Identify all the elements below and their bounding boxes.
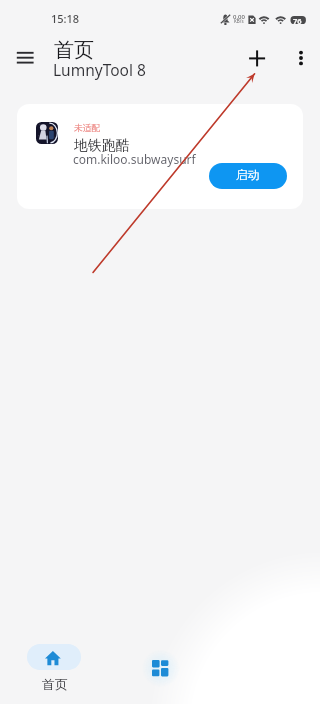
staticText: KB/s <box>234 18 244 24</box>
button[interactable]: 启动 <box>209 163 287 189</box>
staticText: 地铁跑酷 <box>74 137 130 155</box>
staticText: 未适配 <box>74 123 101 134</box>
button[interactable]: 未适配 <box>17 104 303 209</box>
staticText: 76 <box>293 16 302 26</box>
button[interactable]: Add <box>240 41 273 74</box>
staticText: 0.00 <box>233 13 245 21</box>
staticText: 首页 <box>42 676 68 692</box>
button[interactable]: Apps <box>116 638 204 700</box>
staticText: LumnyTool 8 <box>53 59 146 80</box>
staticText: 启动 <box>236 168 260 183</box>
button[interactable]: Open navigation menu <box>9 41 41 75</box>
staticText: 15:18 <box>51 11 80 26</box>
staticText: 首页 <box>54 38 94 63</box>
staticText: com.kiloo.subwaysurf <box>73 151 196 167</box>
button[interactable]: More options <box>288 44 314 70</box>
button[interactable]: 首页 <box>10 638 97 700</box>
